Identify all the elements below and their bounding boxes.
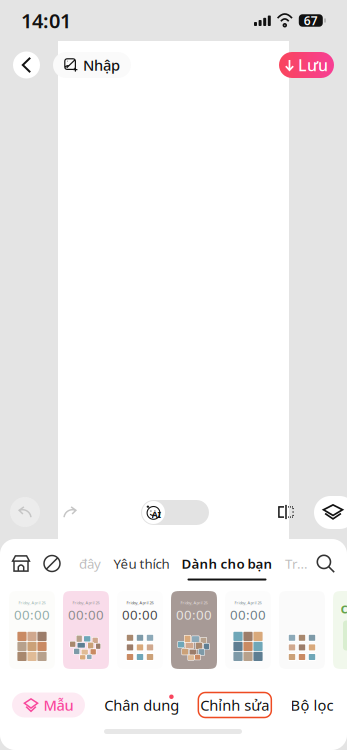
staticText: 00:00: [122, 606, 158, 623]
button[interactable]: Yêu thích: [113, 555, 170, 572]
button[interactable]: Nhập: [53, 52, 131, 78]
button[interactable]: AI mode toggle: [141, 500, 209, 525]
button[interactable]: đây: [73, 555, 101, 572]
staticText: 00:00: [230, 606, 266, 623]
staticText: AI: [151, 508, 161, 520]
staticText: cute: [340, 598, 347, 617]
button[interactable]: Dành cho bạn: [181, 555, 273, 571]
staticText: Tren: [285, 555, 311, 572]
button[interactable]: Chỉnh sửa: [198, 692, 271, 717]
staticText: Friday, April 26: [180, 600, 207, 605]
staticText: Friday, April 26: [18, 600, 45, 605]
staticText: 14:01: [21, 7, 71, 34]
staticText: 00:00: [14, 606, 50, 623]
button[interactable]: Layers: [314, 496, 347, 529]
button[interactable]: Mirror: [272, 498, 300, 526]
staticText: Bộ lọc: [290, 695, 333, 715]
staticText: Dành cho bạn: [181, 555, 272, 572]
button[interactable]: Mẫu: [12, 692, 85, 717]
staticText: Friday, April 26: [126, 600, 153, 605]
staticText: Friday, April 26: [72, 600, 99, 605]
staticText: 00:00: [176, 606, 212, 623]
button[interactable]: Redo: [55, 497, 85, 527]
button[interactable]: Chân dung: [104, 692, 180, 717]
button[interactable]: Search: [315, 553, 336, 574]
button[interactable]: Bộ lọc: [290, 692, 334, 717]
staticText: 67: [304, 12, 318, 28]
button[interactable]: None: [40, 551, 64, 575]
staticText: đây: [79, 555, 101, 572]
staticText: 00:00: [68, 606, 104, 623]
staticText: Mẫu: [43, 695, 73, 715]
button[interactable]: Undo: [10, 497, 40, 527]
button[interactable]: Store: [9, 551, 33, 575]
staticText: Chân dung: [104, 695, 179, 715]
button[interactable]: Tren: [285, 555, 311, 572]
staticText: Friday, April 26: [234, 600, 261, 605]
staticText: Lưu: [298, 54, 328, 76]
staticText: Chỉnh sửa: [200, 695, 269, 715]
button[interactable]: Back: [13, 51, 40, 78]
staticText: Nhập: [83, 55, 120, 75]
staticText: Yêu thích: [113, 555, 169, 572]
button[interactable]: Lưu: [279, 52, 334, 78]
